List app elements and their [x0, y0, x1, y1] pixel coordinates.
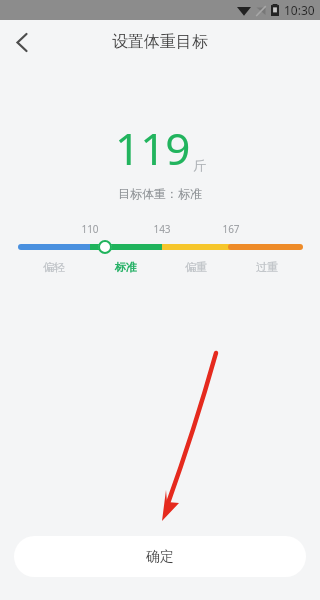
staticText: 167	[211, 222, 251, 236]
button[interactable]: 确定	[14, 536, 306, 577]
staticText: 10:30	[284, 2, 315, 18]
staticText: 确定	[146, 548, 174, 566]
staticText: 119	[115, 118, 191, 178]
staticText: 标准	[106, 260, 146, 274]
staticText: 斤	[193, 157, 206, 173]
button[interactable]: Back	[0, 20, 44, 64]
staticText: 110	[70, 222, 110, 236]
staticText: 目标体重：标准	[0, 186, 320, 201]
staticText: 143	[142, 222, 182, 236]
staticText: 偏重	[176, 260, 216, 274]
staticText: 过重	[247, 260, 287, 274]
staticText: 设置体重目标	[112, 32, 208, 52]
staticText: 偏轻	[34, 260, 74, 274]
